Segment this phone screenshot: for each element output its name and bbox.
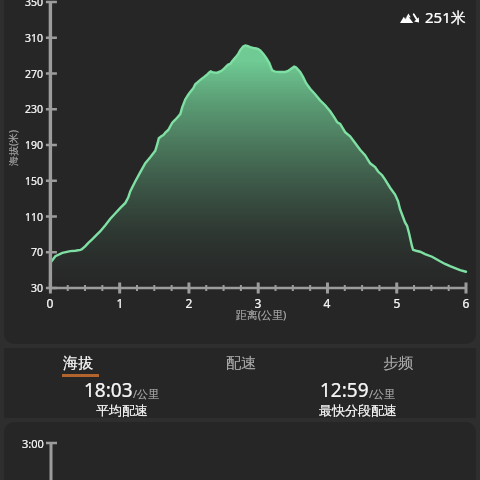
staticText: 310: [14, 31, 43, 45]
staticText: 最快分段配速: [319, 402, 397, 418]
staticText: 70: [14, 245, 43, 259]
staticText: 海拔(米): [6, 130, 20, 166]
staticText: 距离(公里): [201, 307, 321, 322]
staticText: 12:59: [320, 377, 369, 403]
staticText: 270: [14, 67, 43, 81]
staticText: 1: [110, 295, 130, 311]
staticText: 0: [40, 295, 60, 311]
staticText: 2: [179, 295, 199, 311]
staticText: 190: [14, 138, 43, 152]
staticText: 30: [14, 281, 43, 295]
staticText: 6: [456, 295, 476, 311]
staticText: 4: [317, 295, 337, 311]
staticText: /公里: [369, 386, 396, 401]
staticText: 251米: [425, 7, 466, 27]
staticText: 配速: [226, 354, 256, 373]
staticText: 230: [14, 102, 43, 116]
other: Elevation gain: [400, 13, 419, 23]
staticText: 5: [387, 295, 407, 311]
staticText: 海拔: [63, 354, 93, 373]
button[interactable]: 海拔: [4, 348, 162, 380]
staticText: 平均配速: [96, 402, 148, 418]
button[interactable]: 配速: [162, 348, 319, 380]
button[interactable]: Elevation gain: [396, 3, 472, 33]
staticText: 3: [248, 295, 268, 311]
staticText: 18:03: [84, 377, 133, 403]
staticText: 3:00: [22, 436, 44, 451]
staticText: 150: [14, 174, 43, 188]
staticText: 350: [14, 0, 43, 9]
staticText: 步频: [383, 354, 413, 373]
button[interactable]: 步频: [319, 348, 476, 380]
staticText: 110: [14, 210, 43, 224]
staticText: /公里: [133, 386, 160, 401]
